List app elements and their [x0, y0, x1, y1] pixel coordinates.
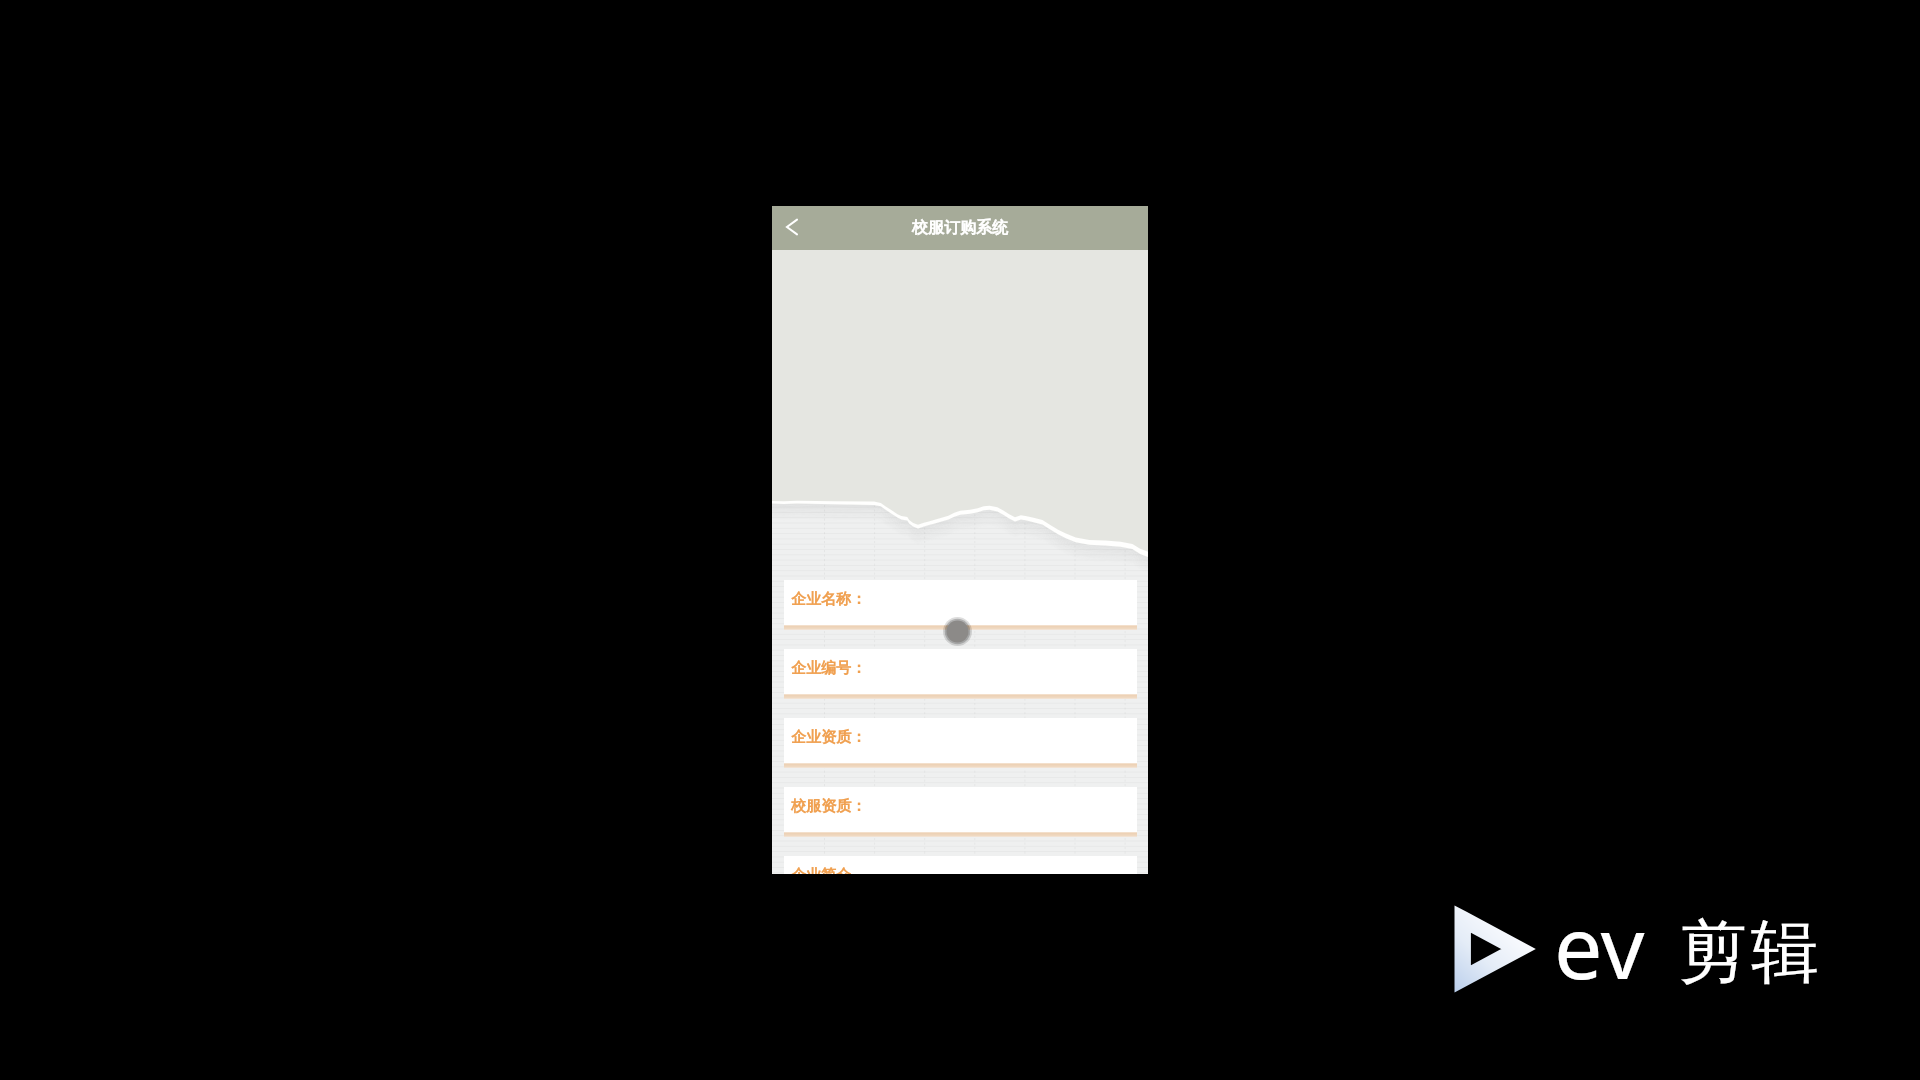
button[interactable]: 校服资质： [784, 787, 1137, 837]
staticText: 校服资质： [791, 797, 866, 816]
staticText: 校服订购系统 [912, 218, 1008, 238]
button[interactable]: Back [772, 206, 812, 250]
button[interactable]: 企业名称： [784, 580, 1137, 630]
other: EV editor watermark [1450, 903, 1532, 995]
staticText: 企业简介 [791, 866, 851, 874]
staticText: ev [1554, 887, 1645, 1004]
staticText: 剪辑 [1677, 910, 1821, 996]
button[interactable]: 企业资质： [784, 718, 1137, 768]
staticText: 企业名称： [791, 590, 866, 609]
button[interactable]: 企业编号： [784, 649, 1137, 699]
button[interactable]: 企业简介 [784, 856, 1137, 874]
staticText: 企业编号： [791, 659, 866, 678]
staticText: 企业资质： [791, 728, 866, 747]
